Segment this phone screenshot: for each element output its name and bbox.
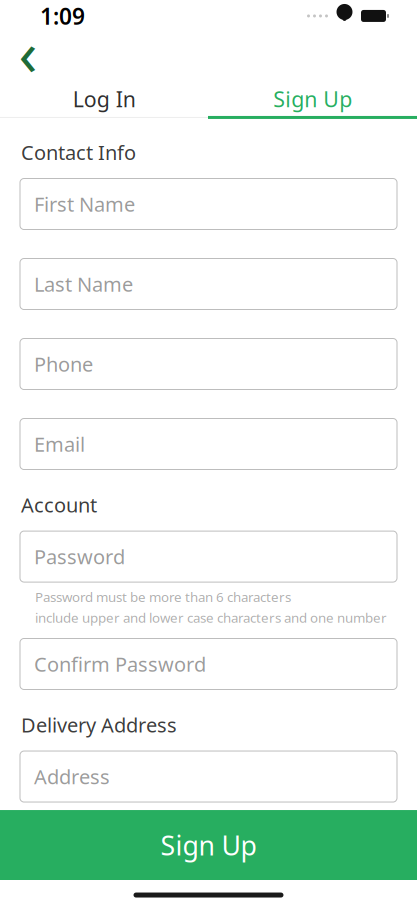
staticText: Password	[34, 543, 125, 570]
button[interactable]: Last Name	[20, 258, 397, 309]
staticText: Sign Up	[160, 827, 256, 863]
staticText: Account	[21, 491, 97, 518]
button[interactable]: Sign Up	[208, 82, 417, 116]
staticText: 1:09	[40, 1, 85, 31]
staticText: Contact Info	[21, 139, 136, 166]
button[interactable]: First Name	[20, 178, 397, 229]
button[interactable]: Log In	[0, 82, 208, 116]
staticText: Confirm Password	[34, 651, 206, 677]
staticText: ‹	[18, 11, 37, 93]
button[interactable]: Password	[20, 531, 397, 582]
button[interactable]: Confirm Password	[20, 638, 397, 689]
staticText: Sign Up	[273, 85, 352, 113]
staticText: Address	[34, 763, 110, 790]
button[interactable]: Sign Up	[0, 810, 417, 880]
staticText: Email	[34, 431, 85, 457]
staticText: Log In	[73, 85, 136, 113]
button[interactable]: Email	[20, 418, 397, 469]
staticText: Delivery Address	[21, 711, 177, 738]
button[interactable]: Address	[20, 751, 397, 802]
staticText: Password must be more than 6 characters	[35, 588, 291, 606]
button[interactable]: Back	[6, 30, 50, 74]
staticText: First Name	[34, 191, 135, 217]
button[interactable]: Phone	[20, 338, 397, 389]
staticText: Phone	[34, 351, 93, 377]
staticText: include upper and lower case characters …	[35, 609, 387, 626]
staticText: Last Name	[34, 271, 133, 297]
